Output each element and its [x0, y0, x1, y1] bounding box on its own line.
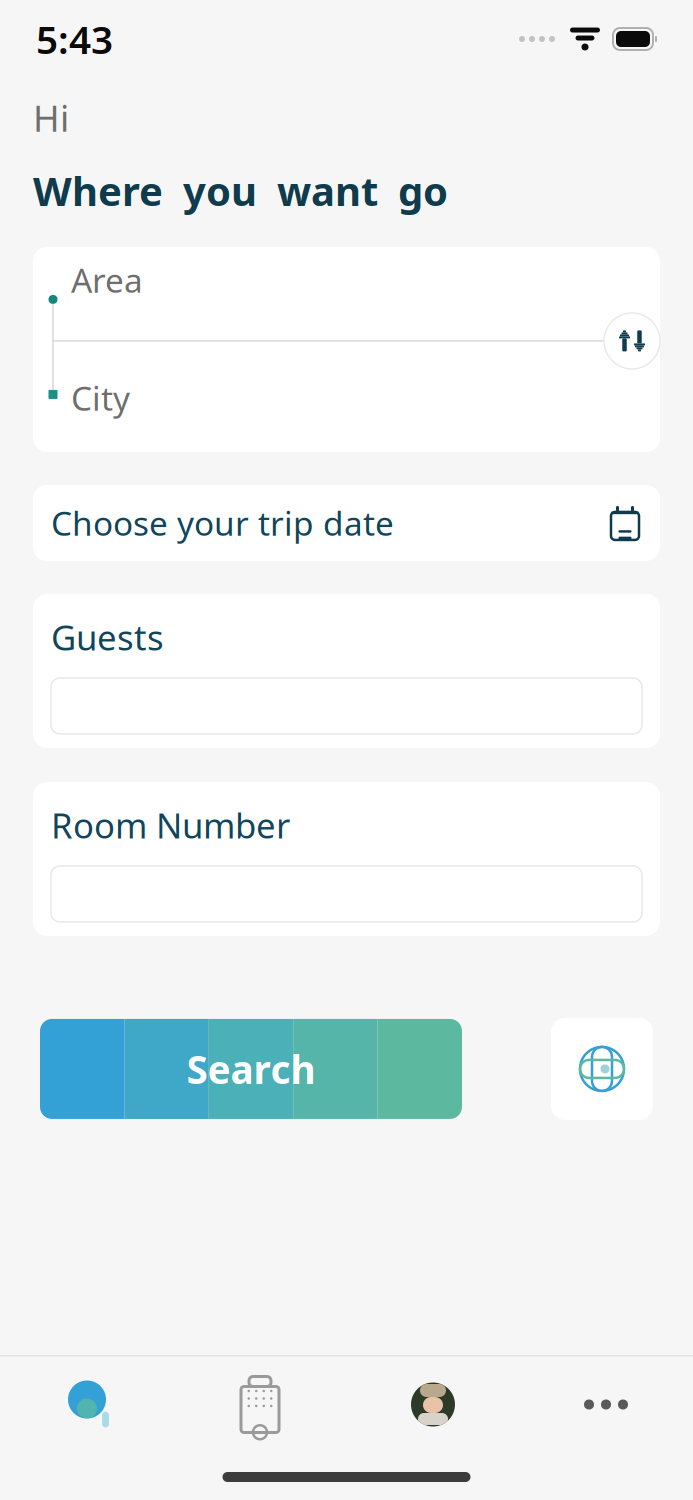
staticText: Search — [186, 1043, 315, 1095]
staticText: Hi — [33, 94, 69, 142]
staticText: Room Number — [51, 802, 290, 848]
button[interactable]: More — [519, 1367, 692, 1441]
button[interactable]: Explore globe — [551, 1018, 653, 1120]
button[interactable]: Hotels — [173, 1367, 346, 1441]
button[interactable]: Search — [40, 1019, 462, 1119]
button[interactable] — [51, 678, 642, 734]
staticText: Guests — [51, 614, 164, 660]
staticText: City — [71, 376, 130, 420]
staticText: Area — [71, 258, 143, 302]
staticText: 5:43 — [36, 13, 113, 65]
staticText: Choose your trip date — [51, 501, 394, 545]
button[interactable]: Choose your trip date — [33, 485, 660, 561]
staticText: Where you want go — [33, 164, 448, 217]
button[interactable]: Profile — [346, 1367, 519, 1441]
button[interactable]: Search — [0, 1367, 173, 1441]
button[interactable] — [51, 866, 642, 922]
